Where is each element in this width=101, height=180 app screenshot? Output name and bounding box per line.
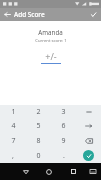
button[interactable]: Backspace bbox=[76, 133, 101, 148]
button[interactable]: . bbox=[51, 148, 76, 163]
staticText: +/- bbox=[45, 50, 57, 62]
button[interactable]: 4 bbox=[0, 119, 26, 133]
staticText: 8 bbox=[36, 136, 41, 146]
staticText: Amanda bbox=[38, 28, 63, 36]
staticText: 5 bbox=[36, 121, 41, 131]
staticText: . bbox=[63, 151, 65, 161]
button[interactable]: Next field bbox=[76, 119, 101, 133]
staticText: 6 bbox=[61, 121, 66, 131]
button[interactable]: Done bbox=[76, 148, 101, 163]
button[interactable]: 5 bbox=[26, 119, 51, 133]
staticText: , bbox=[12, 151, 14, 161]
staticText: 4 bbox=[11, 121, 16, 131]
button[interactable]: 8 bbox=[26, 133, 51, 148]
button[interactable]: 2 bbox=[26, 105, 51, 119]
staticText: Current score: 1 bbox=[35, 38, 67, 44]
staticText: 9 bbox=[61, 136, 66, 146]
button[interactable]: Back bbox=[14, 163, 37, 180]
button[interactable]: +/- bbox=[41, 50, 61, 64]
button[interactable]: Save score bbox=[85, 8, 101, 21]
staticText: 1 bbox=[11, 107, 16, 117]
staticText: 3 bbox=[61, 107, 66, 117]
button[interactable]: 1 bbox=[0, 105, 26, 119]
button[interactable]: 7 bbox=[0, 133, 26, 148]
button[interactable]: 3 bbox=[51, 105, 76, 119]
button[interactable]: Recent apps bbox=[61, 163, 85, 180]
button[interactable]: 9 bbox=[51, 133, 76, 148]
staticText: 7 bbox=[11, 136, 16, 146]
button[interactable]: 0 bbox=[26, 148, 51, 163]
staticText: 0 bbox=[36, 151, 41, 161]
button[interactable]: , bbox=[0, 148, 26, 163]
button[interactable]: 6 bbox=[51, 119, 76, 133]
button[interactable]: Navigate up bbox=[0, 8, 14, 21]
button[interactable]: Switch keyboard bbox=[85, 163, 101, 180]
button[interactable]: Minus bbox=[76, 105, 101, 119]
staticText: 2 bbox=[36, 107, 41, 117]
staticText: Add Score bbox=[14, 10, 85, 19]
button[interactable]: Home bbox=[37, 163, 61, 180]
